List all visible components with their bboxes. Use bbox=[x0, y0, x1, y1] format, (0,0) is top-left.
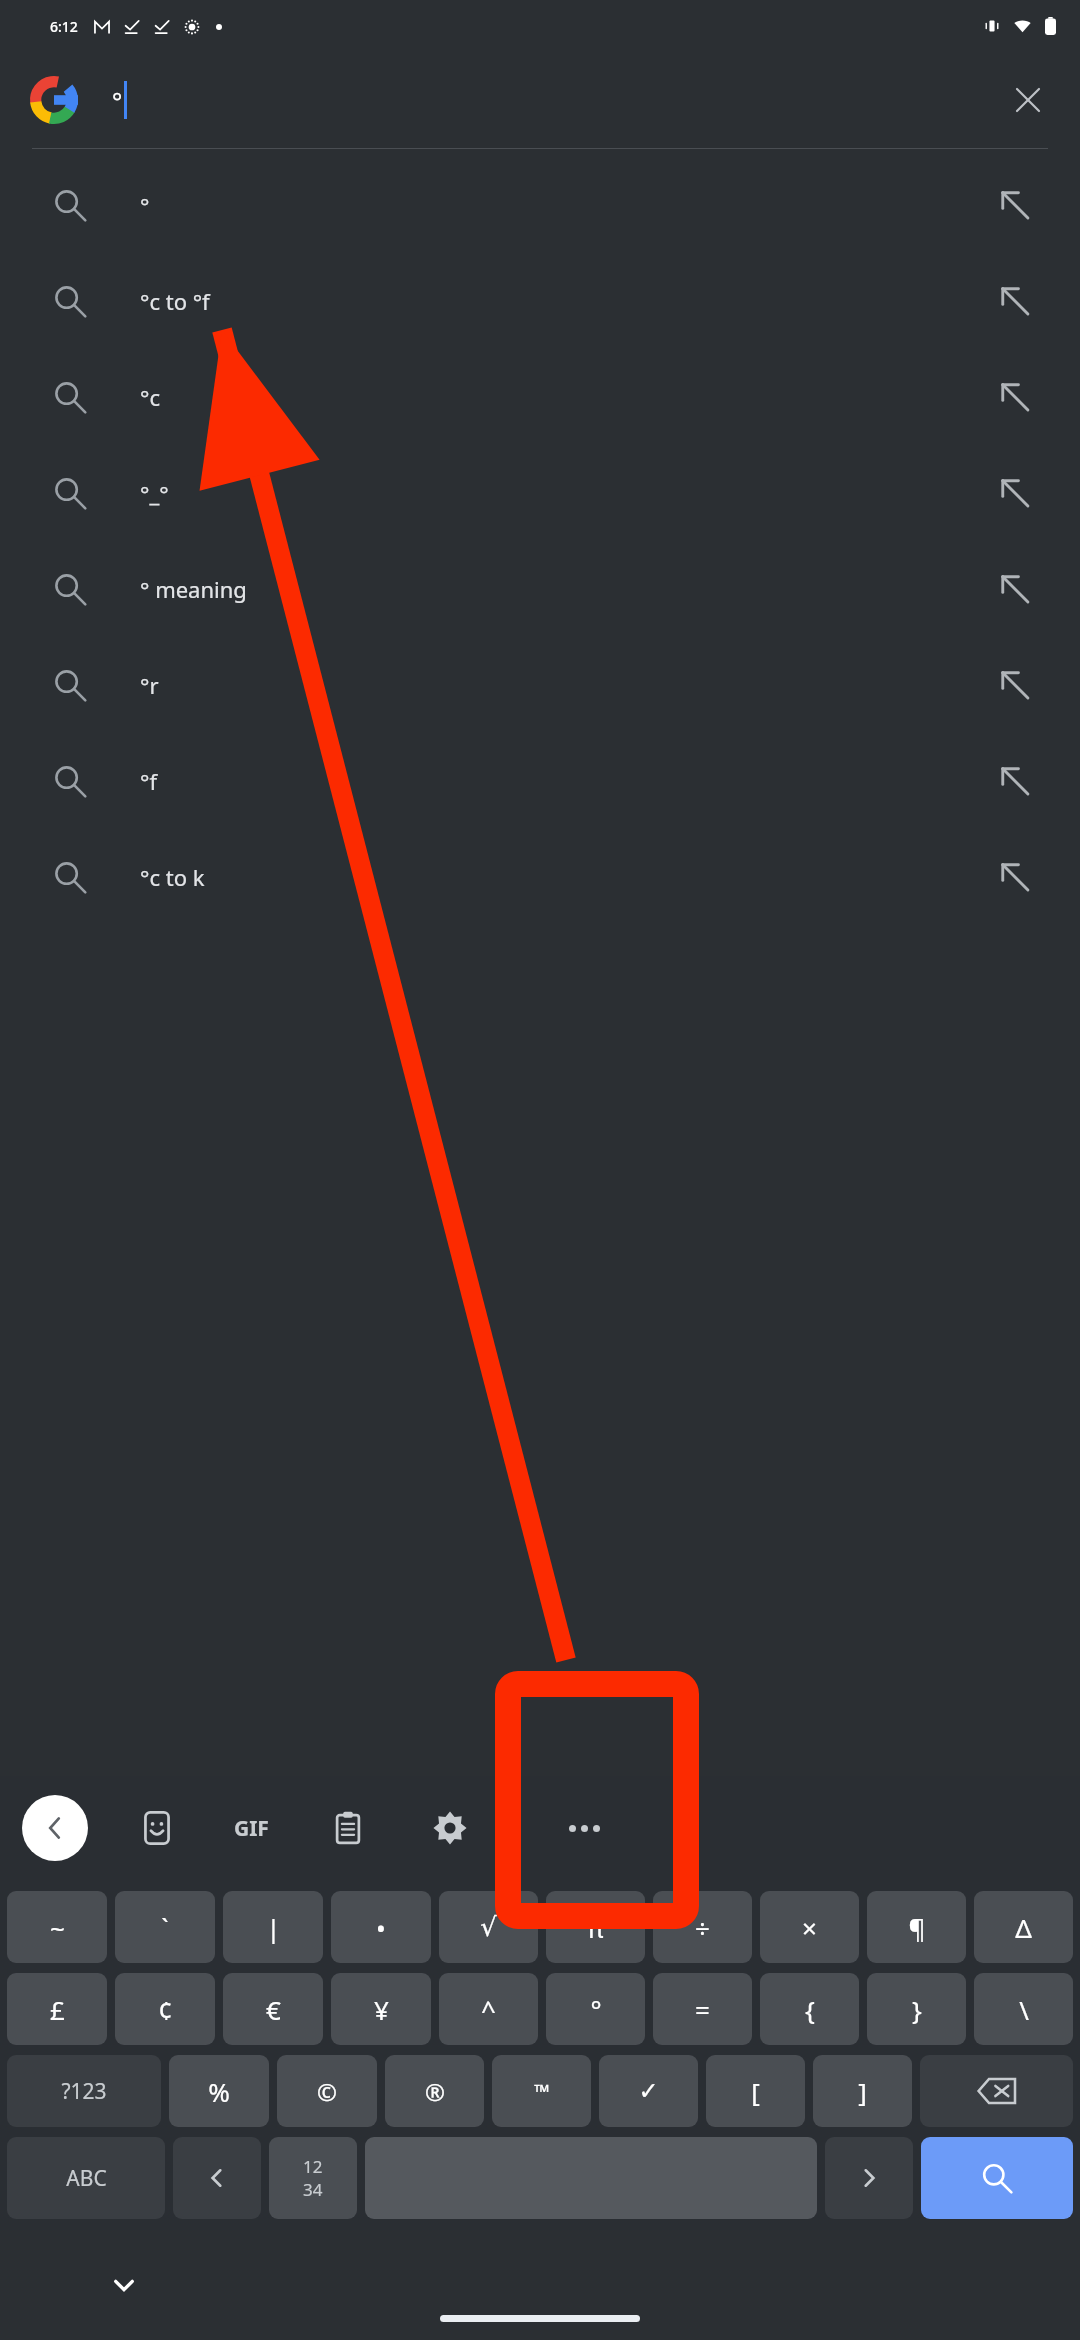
staticText: | bbox=[266, 1910, 281, 1945]
staticText: ° meaning bbox=[140, 574, 950, 604]
button[interactable]: } bbox=[867, 1973, 966, 2045]
staticText: ® bbox=[425, 2075, 445, 2108]
staticText: ¥ bbox=[374, 1992, 389, 2027]
button[interactable]: GIF bbox=[234, 1814, 269, 1843]
button[interactable]: Insert suggestion: ° bbox=[950, 157, 1080, 253]
button[interactable]: Move cursor right bbox=[825, 2137, 913, 2219]
staticText: °f bbox=[140, 766, 950, 796]
button[interactable]: Numbers bbox=[269, 2137, 357, 2219]
button[interactable]: | bbox=[223, 1891, 323, 1963]
staticText: = bbox=[695, 1992, 710, 2027]
staticText: • bbox=[376, 1910, 386, 1945]
staticText: 34 bbox=[303, 2178, 323, 2201]
button[interactable]: °c to °f bbox=[0, 253, 1080, 349]
staticText: ° bbox=[140, 190, 950, 220]
staticText: ¶ bbox=[908, 1910, 926, 1945]
staticText: ] bbox=[858, 2074, 867, 2109]
button[interactable]: ABC bbox=[7, 2137, 165, 2219]
button[interactable]: [ bbox=[706, 2055, 805, 2127]
button[interactable]: ¥ bbox=[331, 1973, 431, 2045]
button[interactable]: Insert suggestion: ° meaning bbox=[950, 541, 1080, 637]
button[interactable]: Insert suggestion: °f bbox=[950, 733, 1080, 829]
button[interactable]: Stickers bbox=[132, 1803, 182, 1853]
staticText: ^ bbox=[481, 1992, 496, 2027]
button[interactable]: Clipboard bbox=[323, 1803, 373, 1853]
button[interactable]: π bbox=[546, 1891, 645, 1963]
button[interactable]: ¢ bbox=[115, 1973, 215, 2045]
button[interactable]: Insert suggestion: °r bbox=[950, 637, 1080, 733]
button[interactable]: Backspace bbox=[920, 2055, 1073, 2127]
staticText: } bbox=[912, 1992, 922, 2027]
staticText: × bbox=[802, 1910, 817, 1945]
button[interactable]: ?123 bbox=[7, 2055, 161, 2127]
button[interactable]: × bbox=[760, 1891, 859, 1963]
button[interactable]: °r bbox=[0, 637, 1080, 733]
button[interactable]: ® bbox=[385, 2055, 484, 2127]
button[interactable]: ✓ bbox=[599, 2055, 698, 2127]
button[interactable]: √ bbox=[439, 1891, 538, 1963]
button[interactable]: ^ bbox=[439, 1973, 538, 2045]
button[interactable]: ¶ bbox=[867, 1891, 966, 1963]
button[interactable]: © bbox=[277, 2055, 377, 2127]
staticText: ¢ bbox=[158, 1992, 173, 2027]
button[interactable]: Clear search bbox=[1002, 74, 1054, 126]
staticText: ` bbox=[161, 1910, 169, 1945]
button[interactable]: °c bbox=[0, 349, 1080, 445]
button[interactable]: °_° bbox=[0, 445, 1080, 541]
button[interactable]: Move cursor left bbox=[173, 2137, 261, 2219]
button[interactable]: ° bbox=[546, 1973, 645, 2045]
staticText: √ bbox=[480, 1912, 497, 1942]
staticText: { bbox=[805, 1992, 815, 2027]
button[interactable]: ` bbox=[115, 1891, 215, 1963]
button[interactable]: € bbox=[223, 1973, 323, 2045]
button[interactable]: ~ bbox=[7, 1891, 107, 1963]
staticText: ° bbox=[590, 1992, 602, 2027]
button[interactable]: Hide keyboard bbox=[100, 2261, 148, 2309]
staticText: % bbox=[208, 2074, 230, 2109]
staticText: ° bbox=[112, 84, 123, 117]
button[interactable]: ° bbox=[0, 157, 1080, 253]
staticText: GIF bbox=[234, 1814, 269, 1843]
staticText: £ bbox=[50, 1992, 65, 2027]
staticText: π bbox=[587, 1910, 604, 1945]
staticText: °r bbox=[140, 670, 950, 700]
button[interactable]: ] bbox=[813, 2055, 912, 2127]
button[interactable]: Back bbox=[22, 1795, 88, 1861]
button[interactable]: { bbox=[760, 1973, 859, 2045]
staticText: Δ bbox=[1015, 1910, 1032, 1945]
staticText: ?123 bbox=[61, 2077, 107, 2106]
button[interactable]: ÷ bbox=[653, 1891, 752, 1963]
staticText: ✓ bbox=[638, 2077, 659, 2105]
staticText: °_° bbox=[140, 478, 950, 508]
staticText: \ bbox=[1019, 1992, 1029, 2027]
staticText: € bbox=[266, 1992, 281, 2027]
button[interactable]: Google bbox=[26, 72, 82, 128]
staticText: ÷ bbox=[695, 1910, 710, 1945]
button[interactable]: Insert suggestion: °_° bbox=[950, 445, 1080, 541]
staticText: °c to °f bbox=[140, 286, 950, 316]
button[interactable]: ™ bbox=[492, 2055, 591, 2127]
button[interactable]: £ bbox=[7, 1973, 107, 2045]
staticText: 12 bbox=[303, 2155, 323, 2178]
button[interactable]: ° meaning bbox=[0, 541, 1080, 637]
button[interactable]: More options bbox=[559, 1803, 609, 1853]
button[interactable]: \ bbox=[974, 1973, 1073, 2045]
button[interactable]: % bbox=[169, 2055, 269, 2127]
staticText: ™ bbox=[534, 2078, 550, 2105]
button[interactable]: Δ bbox=[974, 1891, 1073, 1963]
button[interactable]: Insert suggestion: °c to °f bbox=[950, 253, 1080, 349]
staticText: ABC bbox=[66, 2164, 107, 2193]
staticText: © bbox=[317, 2075, 337, 2108]
button[interactable]: Settings bbox=[425, 1803, 475, 1853]
button[interactable]: °c to k bbox=[0, 829, 1080, 925]
button[interactable]: • bbox=[331, 1891, 431, 1963]
button[interactable]: Search bbox=[921, 2137, 1073, 2219]
staticText: °c bbox=[140, 382, 950, 412]
staticText: °c to k bbox=[140, 862, 950, 892]
button[interactable]: = bbox=[653, 1973, 752, 2045]
button[interactable]: °f bbox=[0, 733, 1080, 829]
button[interactable]: Insert suggestion: °c to k bbox=[950, 829, 1080, 925]
button[interactable]: Insert suggestion: °c bbox=[950, 349, 1080, 445]
staticText: ~ bbox=[50, 1910, 65, 1945]
